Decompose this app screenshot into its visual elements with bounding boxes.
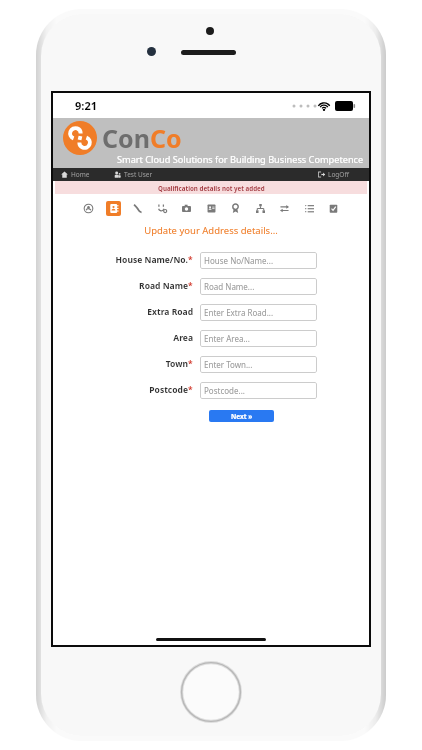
button[interactable]: Home — [59, 170, 92, 179]
button[interactable]: Transfer — [277, 201, 292, 216]
staticText: Co — [150, 121, 182, 155]
button[interactable]: House No/Name... — [200, 252, 317, 269]
button[interactable]: Phone — [130, 201, 145, 216]
button[interactable]: Next » — [209, 410, 274, 422]
staticText: Postcode... — [204, 385, 245, 396]
staticText: Enter Extra Road... — [204, 307, 274, 318]
staticText: * — [188, 384, 193, 396]
button[interactable]: Photo — [179, 201, 194, 216]
button[interactable]: Address — [106, 201, 121, 216]
button[interactable]: Health — [155, 201, 170, 216]
staticText: Town — [165, 358, 188, 370]
staticText: LogOff — [328, 170, 349, 179]
staticText: 9:21 — [75, 98, 97, 113]
staticText: Road Name... — [204, 281, 255, 292]
staticText: * — [188, 358, 193, 370]
button[interactable]: Postcode... — [200, 382, 317, 399]
staticText: * — [188, 280, 193, 292]
button[interactable]: ID Card — [204, 201, 219, 216]
staticText: House Name/No. — [115, 254, 188, 266]
button[interactable]: Enter Extra Road... — [200, 304, 317, 321]
staticText: Smart Cloud Solutions for Building Busin… — [117, 153, 364, 166]
staticText: Road Name — [139, 280, 188, 292]
staticText: Update your Address details... — [53, 224, 369, 237]
button[interactable]: Enter Area... — [200, 330, 317, 347]
staticText: Area — [173, 332, 193, 344]
button[interactable]: Checklist — [326, 201, 341, 216]
staticText: Enter Area... — [204, 333, 250, 344]
staticText: Postcode — [149, 384, 188, 396]
button[interactable]: Enter Town... — [200, 356, 317, 373]
staticText: Con — [102, 121, 150, 155]
button[interactable]: Test User — [112, 170, 155, 179]
button[interactable]: List — [302, 201, 317, 216]
staticText: Home — [71, 170, 90, 179]
staticText: Enter Town... — [204, 359, 253, 370]
staticText: Test User — [124, 170, 153, 179]
button[interactable]: Awards — [228, 201, 243, 216]
staticText: Extra Road — [147, 306, 193, 318]
button[interactable]: Profile — [81, 201, 96, 216]
staticText: Next » — [231, 412, 253, 421]
button[interactable]: Structure — [253, 201, 268, 216]
staticText: * — [188, 254, 193, 266]
staticText: House No/Name... — [204, 255, 274, 266]
button[interactable]: Road Name... — [200, 278, 317, 295]
staticText: Qualification details not yet added — [158, 184, 265, 192]
button[interactable]: LogOff — [316, 170, 351, 179]
